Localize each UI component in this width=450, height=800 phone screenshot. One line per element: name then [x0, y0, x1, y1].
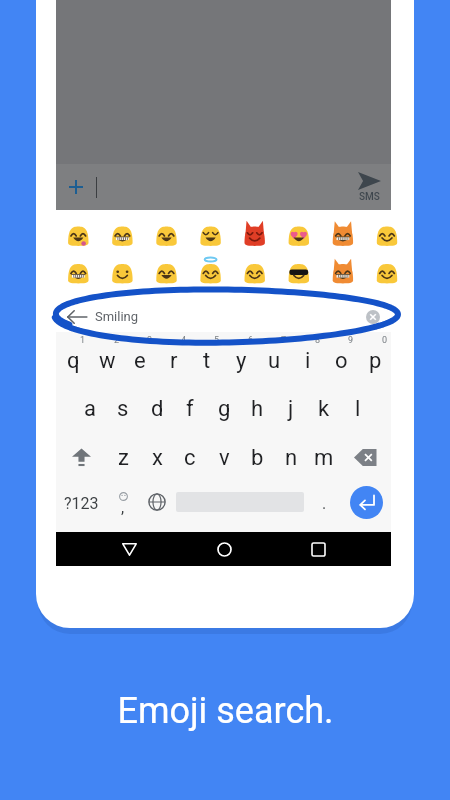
button[interactable]: Backspace	[341, 433, 391, 481]
button[interactable]: Emoji	[106, 478, 140, 526]
staticText: o	[335, 348, 348, 374]
staticText: 1	[80, 335, 86, 346]
staticText: 4	[181, 335, 187, 346]
staticText: b	[251, 445, 264, 471]
staticText: Smiling	[95, 309, 139, 324]
button[interactable]: Home	[202, 532, 246, 566]
button[interactable]: Enter	[350, 486, 383, 519]
button[interactable]: l	[341, 384, 375, 432]
staticText: n	[285, 445, 298, 471]
staticText: g	[218, 396, 231, 422]
button[interactable]: 7	[257, 334, 291, 382]
staticText: 3	[147, 335, 153, 346]
staticText: h	[251, 396, 264, 422]
button[interactable]: s	[106, 384, 140, 432]
staticText: 0	[382, 335, 388, 346]
staticText: 9	[348, 335, 354, 346]
staticText: p	[369, 348, 382, 374]
staticText: f	[186, 396, 194, 422]
button[interactable]: z	[106, 433, 140, 481]
staticText: v	[219, 445, 230, 471]
staticText: u	[268, 348, 281, 374]
button[interactable]: k	[307, 384, 341, 432]
button[interactable]: 2	[90, 334, 124, 382]
staticText: 8	[315, 335, 321, 346]
staticText: a	[84, 396, 96, 422]
staticText: Emoji search.	[117, 690, 334, 732]
staticText: c	[184, 445, 196, 471]
button[interactable]: 5	[190, 334, 224, 382]
button[interactable]: c	[173, 433, 207, 481]
staticText: 5	[214, 335, 220, 346]
staticText: z	[118, 445, 129, 471]
other: Clear	[363, 307, 383, 327]
button[interactable]: Shift	[56, 433, 106, 481]
staticText: t	[203, 348, 211, 374]
button[interactable]: b	[240, 433, 274, 481]
button[interactable]: f	[173, 384, 207, 432]
staticText: ?123	[64, 494, 99, 513]
button[interactable]: n	[274, 433, 308, 481]
staticText: e	[134, 348, 146, 374]
staticText: j	[288, 396, 294, 422]
button[interactable]: d	[140, 384, 174, 432]
staticText: r	[170, 348, 178, 374]
other: Back	[66, 306, 88, 328]
staticText: .	[322, 494, 327, 513]
staticText: w	[99, 348, 116, 374]
button[interactable]: 3	[123, 334, 157, 382]
button[interactable]: j	[274, 384, 308, 432]
staticText: 6	[248, 335, 254, 346]
button[interactable]: Change language	[140, 478, 174, 526]
button[interactable]: Recent apps	[296, 532, 340, 566]
staticText: q	[67, 348, 80, 374]
staticText: SMS	[359, 191, 380, 203]
staticText: m	[314, 445, 334, 471]
staticText: l	[355, 396, 361, 422]
button[interactable]: g	[207, 384, 241, 432]
button[interactable]: 6	[224, 334, 258, 382]
staticText: 2	[114, 335, 120, 346]
button[interactable]: Back	[107, 532, 151, 566]
button[interactable]: ?123	[56, 478, 106, 526]
staticText: d	[151, 396, 164, 422]
button[interactable]: 1	[56, 334, 90, 382]
button[interactable]: 8	[291, 334, 325, 382]
button[interactable]: .	[307, 478, 341, 526]
staticText: k	[318, 396, 330, 422]
button[interactable]: Add attachment	[63, 174, 89, 200]
button[interactable]: v	[207, 433, 241, 481]
button[interactable]: x	[140, 433, 174, 481]
button[interactable]: 0	[358, 334, 392, 382]
staticText: s	[117, 396, 129, 422]
staticText: ,	[121, 498, 125, 517]
staticText: x	[152, 445, 163, 471]
button[interactable]: 9	[324, 334, 358, 382]
button[interactable]: a	[73, 384, 107, 432]
staticText: i	[305, 348, 311, 374]
staticText: 7	[281, 335, 287, 346]
button[interactable]: h	[240, 384, 274, 432]
button[interactable]: m	[307, 433, 341, 481]
button[interactable]: 4	[157, 334, 191, 382]
button[interactable]: Send SMS	[356, 172, 383, 203]
staticText: y	[236, 348, 247, 374]
button[interactable]: Back	[56, 301, 391, 332]
